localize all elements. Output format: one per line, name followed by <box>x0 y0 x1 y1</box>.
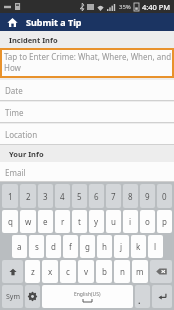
button[interactable]: English(US) <box>42 285 133 308</box>
button[interactable]: u <box>106 210 121 233</box>
staticText: d <box>51 241 56 252</box>
button[interactable]: 1 <box>2 184 18 208</box>
staticText: m <box>136 266 144 277</box>
staticText: 1 <box>8 191 13 202</box>
staticText: i <box>129 216 132 227</box>
staticText: h <box>102 241 107 252</box>
staticText: Email <box>5 167 26 178</box>
button[interactable]: z <box>25 260 40 283</box>
button[interactable]: Time <box>0 102 174 123</box>
staticText: 5 <box>77 191 82 202</box>
staticText: 9 <box>145 191 150 202</box>
staticText: . <box>138 294 141 306</box>
staticText: v <box>84 266 89 277</box>
staticText: r <box>61 216 65 227</box>
button[interactable]: a <box>12 235 27 258</box>
staticText: k <box>136 241 141 252</box>
staticText: 0 <box>162 191 167 202</box>
staticText: e <box>43 216 48 227</box>
staticText: 4:40 PM <box>142 2 171 12</box>
button[interactable]: Tap to Enter Crime: What, Where, When, a… <box>0 48 174 78</box>
staticText: Tap to Enter Crime: What, Where, When, a… <box>4 51 174 73</box>
staticText: f <box>69 241 72 252</box>
button[interactable]: c <box>60 260 76 283</box>
staticText: o <box>145 216 150 227</box>
staticText: p <box>162 216 167 227</box>
button[interactable]: Enter <box>152 285 172 308</box>
staticText: Incident Info <box>9 35 58 45</box>
button[interactable]: m <box>132 260 148 283</box>
staticText: w <box>25 216 32 227</box>
staticText: j <box>120 241 123 252</box>
staticText: l <box>154 241 157 252</box>
button[interactable]: x <box>42 260 58 283</box>
button[interactable]: 3 <box>38 184 53 208</box>
staticText: b <box>102 266 107 277</box>
button[interactable]: Location <box>0 124 174 145</box>
button[interactable]: Settings <box>25 285 40 308</box>
staticText: Your Info <box>9 149 44 159</box>
staticText: x <box>48 266 53 277</box>
staticText: Submit a Tip <box>26 16 82 28</box>
button[interactable]: Delete <box>150 260 172 283</box>
button[interactable]: 4 <box>55 184 70 208</box>
button[interactable]: s <box>29 235 44 258</box>
button[interactable]: 5 <box>72 184 87 208</box>
button[interactable]: t <box>72 210 87 233</box>
staticText: English(US) <box>74 291 101 298</box>
button[interactable]: 9 <box>140 184 155 208</box>
staticText: 35% <box>119 3 131 11</box>
button[interactable]: 0 <box>157 184 172 208</box>
staticText: z <box>31 266 35 277</box>
button[interactable]: k <box>131 235 146 258</box>
staticText: Time <box>5 107 24 118</box>
button[interactable]: Home <box>6 16 19 29</box>
staticText: 3 <box>43 191 48 202</box>
button[interactable]: y <box>89 210 104 233</box>
button[interactable]: r <box>55 210 70 233</box>
button[interactable]: 7 <box>106 184 121 208</box>
button[interactable]: v <box>78 260 94 283</box>
button[interactable]: g <box>80 235 95 258</box>
button[interactable]: i <box>123 210 138 233</box>
staticText: 2 <box>26 191 31 202</box>
button[interactable]: w <box>20 210 36 233</box>
staticText: n <box>120 266 125 277</box>
button[interactable]: 6 <box>89 184 104 208</box>
button[interactable]: . <box>135 285 150 308</box>
button[interactable]: 2 <box>20 184 36 208</box>
staticText: q <box>8 216 13 227</box>
button[interactable]: q <box>2 210 18 233</box>
staticText: s <box>35 241 39 252</box>
staticText: y <box>94 216 99 227</box>
button[interactable]: n <box>114 260 130 283</box>
button[interactable]: b <box>96 260 112 283</box>
staticText: 8 <box>128 191 133 202</box>
staticText: u <box>111 216 116 227</box>
button[interactable]: Sym <box>2 285 23 308</box>
button[interactable]: o <box>140 210 155 233</box>
staticText: Sym <box>6 292 20 302</box>
button[interactable]: Date <box>0 80 174 101</box>
staticText: Location <box>5 129 38 140</box>
button[interactable]: p <box>157 210 172 233</box>
staticText: a <box>17 241 22 252</box>
button[interactable]: d <box>46 235 61 258</box>
staticText: 7 <box>111 191 116 202</box>
staticText: 6 <box>94 191 99 202</box>
button[interactable]: l <box>148 235 163 258</box>
button[interactable]: j <box>114 235 129 258</box>
button[interactable]: h <box>97 235 112 258</box>
button[interactable]: 8 <box>123 184 138 208</box>
staticText: c <box>66 266 70 277</box>
button[interactable]: f <box>63 235 78 258</box>
button[interactable]: e <box>38 210 53 233</box>
staticText: g <box>85 241 90 252</box>
staticText: Date <box>5 85 23 96</box>
button[interactable]: Shift <box>2 260 23 283</box>
staticText: t <box>78 216 81 227</box>
button[interactable]: Email <box>0 162 174 182</box>
staticText: 4 <box>60 191 65 202</box>
